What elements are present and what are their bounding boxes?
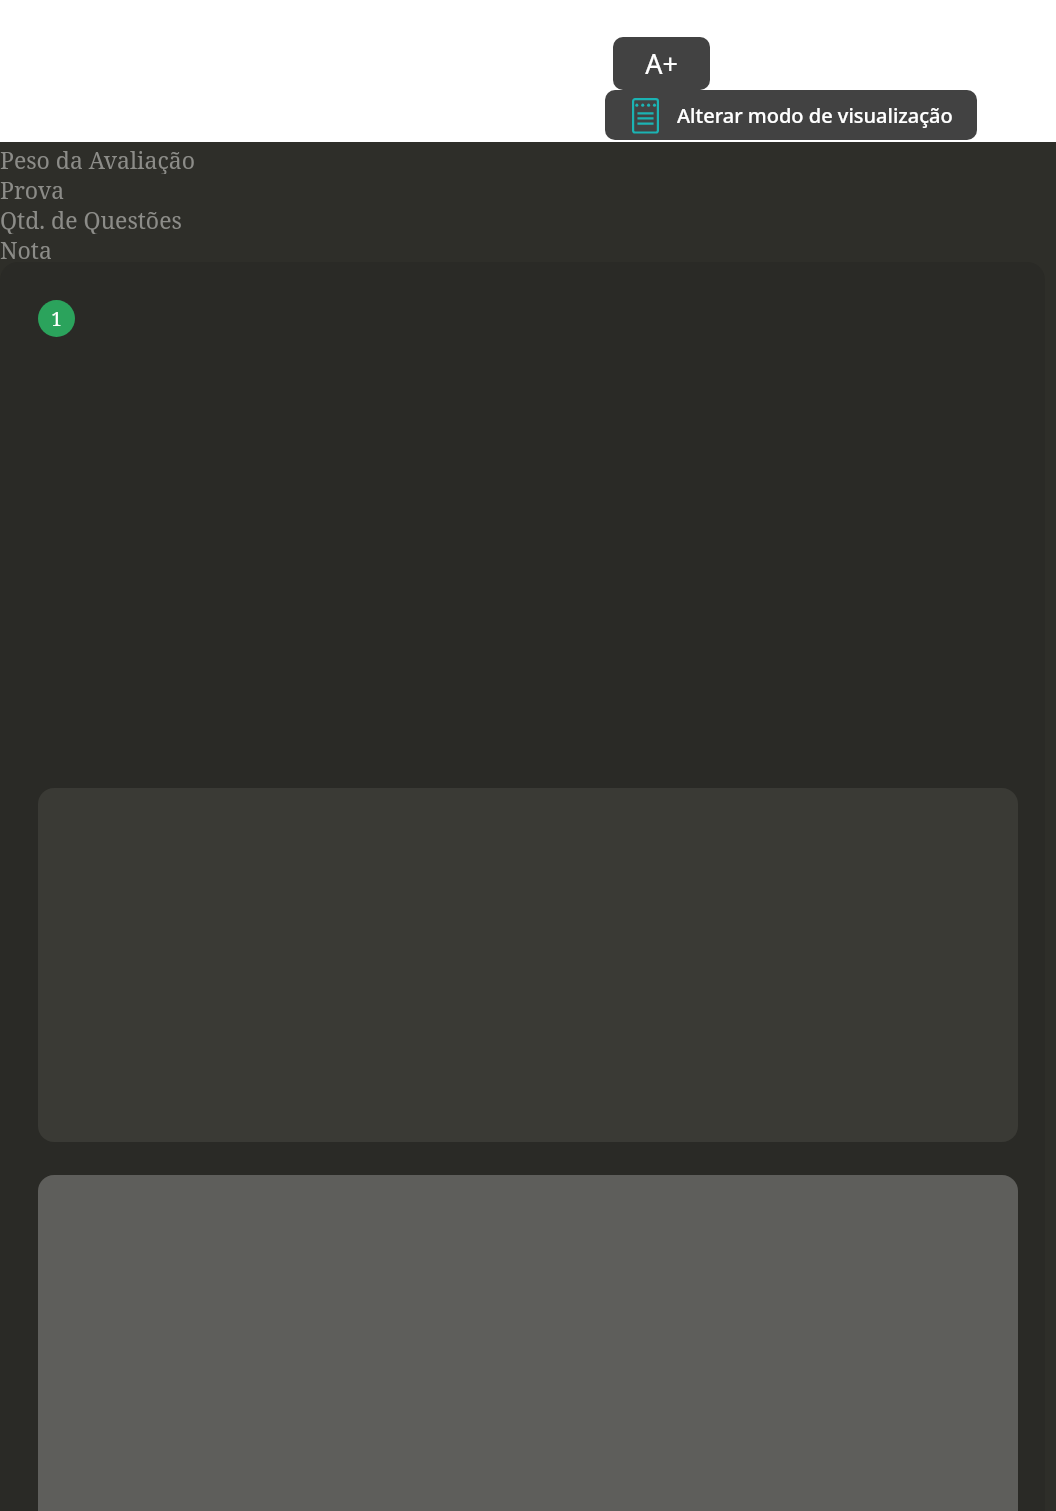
staticText: 1: [51, 306, 62, 332]
staticText: Qtd. de Questões: [0, 204, 182, 234]
button[interactable]: Prova: [0, 174, 65, 204]
staticText: A+: [645, 45, 678, 82]
staticText: Nota: [0, 234, 52, 264]
button[interactable]: 1: [38, 300, 75, 337]
staticText: Alterar modo de visualização: [677, 102, 953, 129]
button[interactable]: Qtd. de Questões: [0, 204, 182, 234]
button[interactable]: Alterar modo de visualização: [605, 90, 977, 140]
button[interactable]: Nota: [0, 234, 52, 264]
staticText: Prova: [0, 174, 65, 204]
staticText: Peso da Avaliação: [0, 144, 195, 174]
button[interactable]: A+: [613, 37, 710, 90]
button[interactable]: Peso da Avaliação: [0, 144, 195, 174]
button[interactable]: 1: [0, 262, 1045, 1511]
